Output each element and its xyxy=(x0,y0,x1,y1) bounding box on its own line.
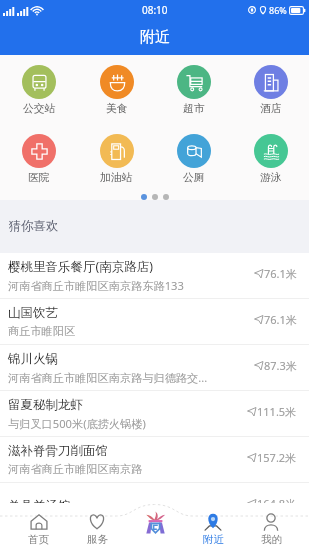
staticText: 我的 xyxy=(261,533,282,546)
staticText: 164.8米 xyxy=(257,496,297,511)
staticText: 附近 xyxy=(203,533,224,546)
button[interactable]: 加油站 xyxy=(78,134,155,185)
staticText: 河南省商丘市睢阳区南京路与归德路交... xyxy=(8,370,208,385)
staticText: 157.2米 xyxy=(257,450,297,465)
button[interactable]: 留夏秘制龙虾 xyxy=(0,391,309,436)
staticText: 87.3米 xyxy=(264,358,297,373)
staticText: 医院 xyxy=(28,171,50,185)
button[interactable]: 滋补脊骨刀削面馆 xyxy=(0,437,309,482)
button[interactable]: 服务 xyxy=(68,503,126,550)
staticText: 河南省商丘市睢阳区南京路 xyxy=(8,462,143,476)
button[interactable]: 单县羊汤馆 xyxy=(0,483,309,528)
staticText: 猜你喜欢 xyxy=(9,218,59,233)
staticText: 锦川火锅 xyxy=(8,351,58,367)
button[interactable]: 锦川火锅 xyxy=(0,345,309,390)
staticText: 酒店 xyxy=(260,102,282,116)
staticText: 山国饮艺 xyxy=(8,305,58,321)
staticText: 美食 xyxy=(106,102,128,116)
staticText: 超市 xyxy=(183,102,205,116)
button[interactable]: 公交站 xyxy=(0,65,78,116)
staticText: 商丘市睢阳区 xyxy=(8,324,76,338)
staticText: 08:10 xyxy=(142,3,168,17)
button[interactable]: 首页 xyxy=(9,503,68,550)
button[interactable]: 山国饮艺 xyxy=(0,299,309,344)
staticText: 76.1米 xyxy=(264,266,297,281)
staticText: 86% xyxy=(269,4,287,16)
staticText: 76.1米 xyxy=(264,312,297,327)
staticText: 河南省商丘市睢阳区南京路东路133 xyxy=(8,278,184,293)
button[interactable]: 医院 xyxy=(0,134,78,185)
button[interactable]: 美食 xyxy=(78,65,155,116)
button[interactable]: 公厕 xyxy=(155,134,232,185)
staticText: 附近 xyxy=(140,28,170,47)
button[interactable]: 扫一扫 xyxy=(126,503,184,550)
staticText: 游泳 xyxy=(260,171,282,185)
button[interactable]: 樱桃里音乐餐厅(南京路店) xyxy=(0,253,309,298)
button[interactable]: 游泳 xyxy=(232,134,309,185)
staticText: 公交站 xyxy=(23,102,56,116)
staticText: 滋补脊骨刀削面馆 xyxy=(8,443,108,459)
button[interactable]: 酒店 xyxy=(232,65,309,116)
staticText: 公厕 xyxy=(183,171,205,185)
staticText: 单县羊汤馆 xyxy=(8,498,71,514)
staticText: 留夏秘制龙虾 xyxy=(8,397,83,413)
button[interactable]: 我的 xyxy=(242,503,300,550)
staticText: 111.5米 xyxy=(257,404,297,419)
staticText: 首页 xyxy=(28,533,49,546)
staticText: 加油站 xyxy=(100,171,133,185)
button[interactable]: 附近 xyxy=(184,503,242,550)
staticText: 樱桃里音乐餐厅(南京路店) xyxy=(8,258,154,275)
staticText: 服务 xyxy=(87,533,108,546)
staticText: 与归叉口500米(底捞火锅楼) xyxy=(8,416,146,431)
button[interactable]: 超市 xyxy=(155,65,232,116)
